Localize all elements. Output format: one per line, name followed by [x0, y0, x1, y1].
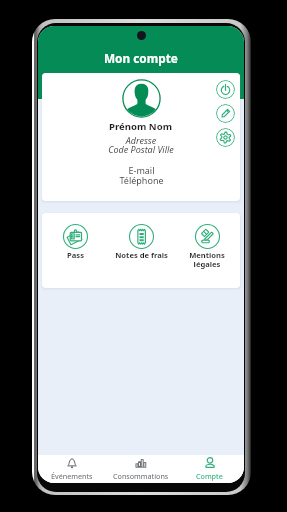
staticText: Événements	[51, 471, 93, 481]
button[interactable]: Consommations	[106, 455, 175, 483]
staticText: Notes de frais	[115, 250, 168, 260]
staticText: Consommations	[113, 471, 169, 481]
staticText: Adresse Code Postal Ville	[108, 134, 174, 156]
staticText: Prénom Nom	[109, 120, 173, 133]
button[interactable]: Mentions légales	[174, 213, 240, 269]
button[interactable]: Notes de frais	[108, 213, 174, 260]
button[interactable]: Edit profile	[216, 104, 235, 123]
button[interactable]: Settings	[216, 128, 235, 147]
staticText: Pass	[67, 250, 84, 260]
staticText: Compte	[196, 471, 223, 481]
button[interactable]: Événements	[38, 455, 106, 483]
staticText: E-mail Téléphone	[119, 164, 164, 186]
button[interactable]: Power	[216, 80, 235, 99]
button[interactable]: Compte	[175, 455, 244, 483]
button[interactable]: Pass	[42, 213, 108, 260]
staticText: Mentions légales	[189, 250, 225, 269]
staticText: Mon compte	[104, 50, 178, 66]
